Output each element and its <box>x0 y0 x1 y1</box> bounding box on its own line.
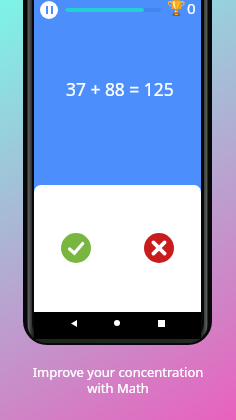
button[interactable]: Recents <box>150 312 172 334</box>
staticText: 0 <box>187 0 196 18</box>
button[interactable]: Correct answer <box>61 233 91 263</box>
staticText: 🏆 <box>167 0 186 17</box>
staticText: 37 + 88 = 125 <box>66 77 174 101</box>
button[interactable]: Back <box>63 312 85 334</box>
staticText: Improve your concentration with Math <box>0 363 236 396</box>
button[interactable]: Wrong answer <box>144 233 174 263</box>
button[interactable]: Pause <box>40 1 58 19</box>
button[interactable]: Home <box>106 312 128 334</box>
